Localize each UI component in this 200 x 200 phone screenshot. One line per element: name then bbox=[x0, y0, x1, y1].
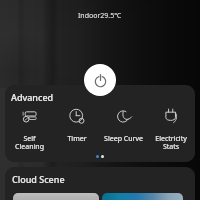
staticText: Cloud Scene bbox=[12, 173, 65, 185]
button[interactable]: Power bbox=[84, 64, 116, 96]
staticText: Electricity Stats bbox=[155, 134, 187, 151]
button[interactable] bbox=[102, 193, 183, 200]
staticText: Advanced bbox=[11, 91, 54, 103]
button[interactable]: Timer bbox=[54, 108, 99, 144]
button[interactable]: Electricity Stats bbox=[148, 108, 193, 151]
button[interactable]: Self Cleaning bbox=[7, 108, 52, 151]
staticText: Indoor29.5℃ bbox=[78, 11, 122, 21]
staticText: Sleep Curve bbox=[104, 134, 143, 144]
staticText: Timer bbox=[67, 134, 87, 144]
button[interactable] bbox=[13, 193, 99, 200]
button[interactable]: Sleep Curve bbox=[101, 108, 146, 144]
staticText: Self Cleaning bbox=[15, 134, 44, 151]
